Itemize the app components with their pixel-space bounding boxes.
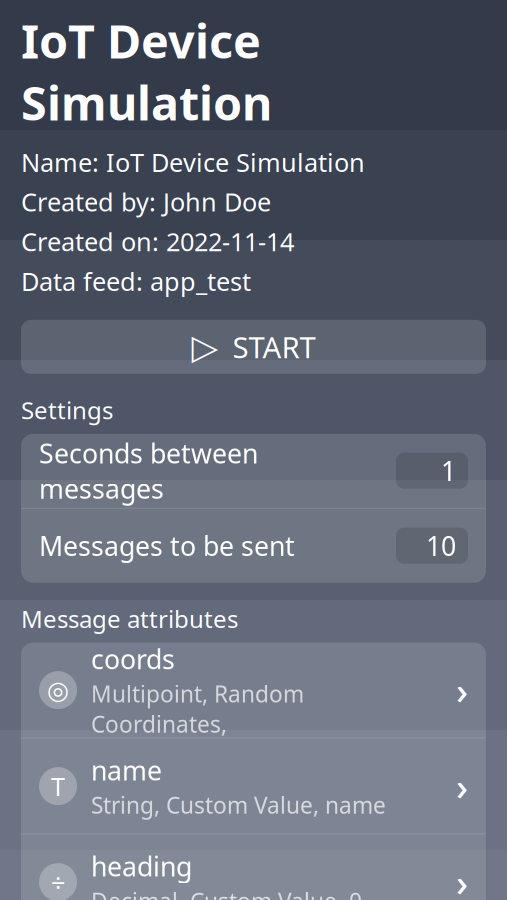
staticText: name [91,752,162,788]
button[interactable]: ▷ [21,320,486,374]
staticText: ▷ [191,327,218,366]
staticText: Messages to be sent [39,528,295,563]
button[interactable]: ÷ [21,835,486,900]
staticText: 1 [441,453,456,488]
staticText: ÷ [51,865,65,899]
staticText: 10 [426,528,456,563]
staticText: ◎ [47,676,69,705]
staticText: String, Custom Value, name [91,790,386,820]
staticText: › [456,857,468,900]
staticText: heading [91,848,192,884]
button[interactable]: T [21,739,486,834]
staticText: Message attributes [21,603,238,635]
staticText: Name: IoT Device Simulation [21,145,365,179]
staticText: IoT Device Simulation [21,9,272,133]
staticText: T [51,769,65,803]
staticText: Multipoint, Random Coordinates, [91,679,304,739]
staticText: START [232,327,315,366]
staticText: Settings [21,394,113,426]
staticText: coords [91,641,175,677]
staticText: Decimal, Custom Value, 0 [91,886,362,900]
button[interactable]: ◎ [21,643,486,738]
staticText: Created on: 2022-11-14 [21,225,294,258]
button[interactable]: Seconds between messages [21,434,486,508]
staticText: › [456,665,468,715]
staticText: › [456,761,468,811]
staticText: Data feed: app_test [21,264,251,298]
staticText: Seconds between messages [39,435,258,506]
button[interactable]: Messages to be sent [21,509,486,583]
staticText: Created by: John Doe [21,185,271,219]
